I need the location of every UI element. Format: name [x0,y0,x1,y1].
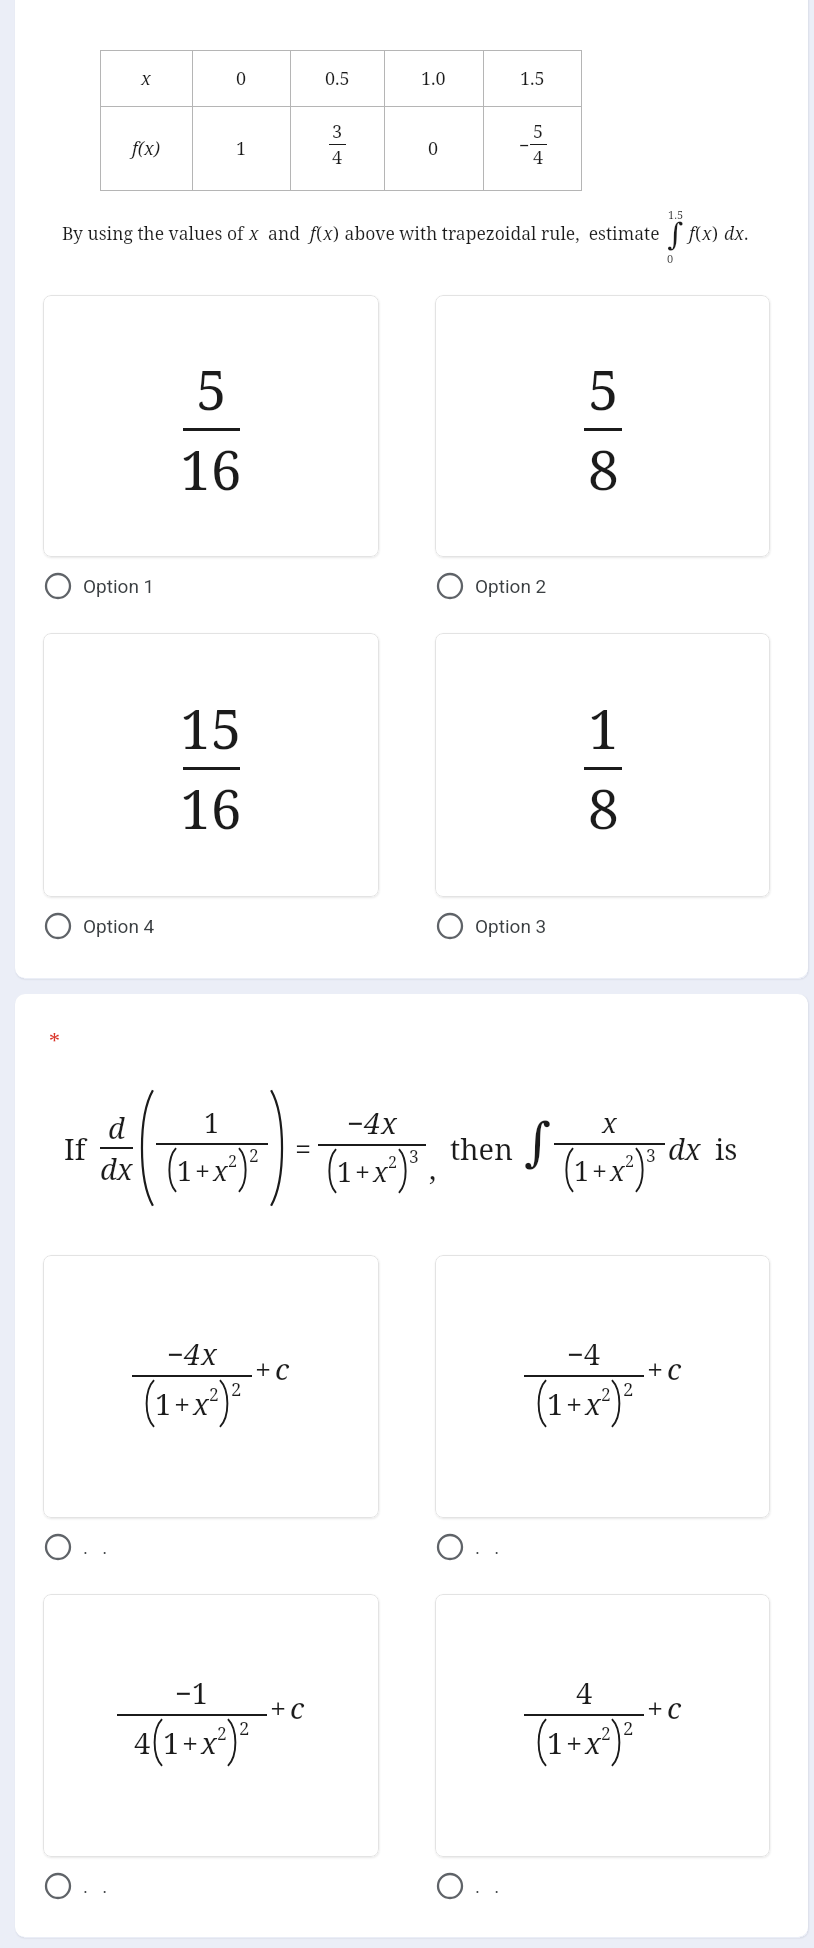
staticText: 2 [209,1382,219,1406]
staticText: 0 [236,66,247,91]
button[interactable]: −1 [43,1594,379,1857]
staticText: 3 [409,1145,419,1169]
button[interactable]: . . [433,1869,770,1903]
staticText: dx [724,221,744,245]
staticText: 2 [601,1382,611,1406]
staticText: 2 [601,1721,611,1745]
staticText: 2 [249,1144,259,1168]
staticText: 1 [337,1153,353,1190]
staticText: 15 [180,690,242,765]
staticText: Option 2 [475,575,547,597]
staticText: and [259,221,310,245]
staticText: x [373,1153,388,1190]
staticText: 2 [625,1150,635,1172]
staticText: + [270,1688,287,1727]
staticText: 4 [576,1673,593,1712]
staticText: 4 [332,145,343,170]
staticText: 3 [646,1144,656,1168]
staticText: 1 [236,136,247,161]
staticText: x [610,1152,625,1189]
staticText: above with trapezoidal rule, estimate [340,221,660,245]
staticText: ) [712,221,719,245]
staticText: 16 [180,770,242,845]
staticText: 1 [588,690,619,765]
staticText: x [381,1103,397,1142]
staticText: . . [475,1536,500,1558]
staticText: ( [695,221,702,245]
button[interactable]: . . [41,1869,379,1903]
staticText: 2 [623,1715,634,1740]
staticText: . . [475,1875,500,1897]
button[interactable]: . . [41,1530,379,1564]
staticText: 4 [184,1334,201,1373]
button[interactable]: 4 [435,1594,770,1857]
staticText: x [193,1384,209,1423]
staticText: 0 [428,136,439,161]
button[interactable]: Option 3 [433,909,770,943]
staticText: 0 [667,251,674,266]
staticText: = [295,1129,312,1168]
staticText: 1 [163,1723,180,1762]
button[interactable]: −4 [435,1255,770,1518]
staticText: x [201,1334,217,1373]
staticText: + [566,1723,583,1762]
staticText: Option 4 [83,915,155,937]
staticText: 1 [574,1152,590,1189]
staticText: + [255,1349,272,1388]
staticText: x [323,221,333,245]
staticText: x [213,1152,228,1189]
staticText: 1 [547,1384,564,1423]
staticText: + [647,1349,664,1388]
button[interactable]: Option 1 [41,569,379,603]
staticText: 1 [155,1384,172,1423]
staticText: − [347,1103,364,1142]
staticText: 2 [623,1376,634,1401]
staticText: 1.0 [421,66,446,91]
staticText: . . [83,1875,108,1897]
button[interactable]: 1 [435,633,770,897]
button[interactable]: Option 2 [433,569,770,603]
staticText: −4 [567,1334,601,1373]
staticText: Option 3 [475,915,547,937]
staticText: c [667,1349,682,1388]
staticText: x [585,1384,601,1423]
staticText: d [108,1108,125,1147]
button[interactable]: − [43,1255,379,1518]
staticText: 2 [239,1715,250,1740]
staticText: ∫ [667,216,684,252]
staticText: 2 [231,1376,242,1401]
staticText: 8 [588,770,619,845]
staticText: 1 [177,1152,193,1189]
staticText: 8 [588,431,619,506]
staticText: 1 [204,1104,220,1141]
staticText: 3 [332,119,343,144]
staticText: x [602,1104,617,1141]
staticText: c [275,1349,290,1388]
staticText: If [64,1129,86,1168]
staticText: . [744,221,749,245]
staticText: * [49,1026,61,1056]
staticText: ( [316,221,323,245]
staticText: 0.5 [325,66,350,91]
staticText: x [249,221,259,245]
button[interactable]: 5 [43,295,379,557]
staticText: ∫ [524,1112,552,1173]
staticText: 5 [196,351,227,426]
staticText: 4 [134,1723,151,1762]
button[interactable]: . . [433,1530,770,1564]
staticText: 4 [533,145,544,170]
staticText: , [429,1149,437,1188]
staticText: 2 [388,1151,398,1173]
staticText: 5 [533,119,544,144]
staticText: dx [100,1149,133,1188]
staticText: 1.5 [520,66,545,91]
staticText: 4 [364,1103,381,1142]
button[interactable]: 5 [435,295,770,557]
staticText: ) [333,221,340,245]
button[interactable]: Option 4 [41,909,379,943]
staticText: f [310,221,316,245]
staticText: c [667,1688,682,1727]
button[interactable]: 15 [43,633,379,897]
staticText: 2 [228,1150,238,1172]
staticText: + [174,1384,191,1423]
